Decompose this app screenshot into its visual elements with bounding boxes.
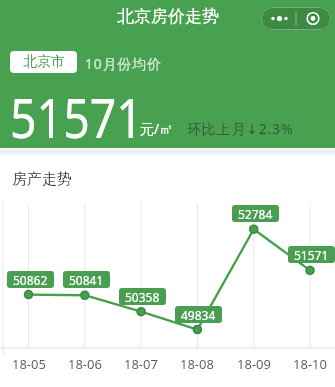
button[interactable]: 北京市 <box>10 51 77 73</box>
staticText: 18-05 <box>12 355 46 373</box>
staticText: 元/㎡ <box>140 119 174 138</box>
staticText: 18-09 <box>237 355 271 373</box>
staticText: 52784 <box>238 206 273 222</box>
staticText: 18-08 <box>180 355 214 373</box>
staticText: 10月份均价 <box>85 54 162 73</box>
button[interactable] <box>261 7 331 30</box>
staticText: 房产走势 <box>12 170 72 189</box>
staticText: 49834 <box>181 307 216 323</box>
staticText: 环比上月↓2.3% <box>187 119 294 138</box>
staticText: 北京房价走势 <box>117 6 219 27</box>
staticText: 51571 <box>10 79 143 154</box>
staticText: 50358 <box>125 289 160 305</box>
staticText: 18-07 <box>124 355 158 373</box>
staticText: 50862 <box>13 272 48 288</box>
staticText: 18-10 <box>293 355 327 373</box>
staticText: 北京市 <box>23 53 65 71</box>
staticText: 18-06 <box>68 355 102 373</box>
staticText: 50841 <box>69 272 104 288</box>
staticText: 51571 <box>294 247 329 263</box>
